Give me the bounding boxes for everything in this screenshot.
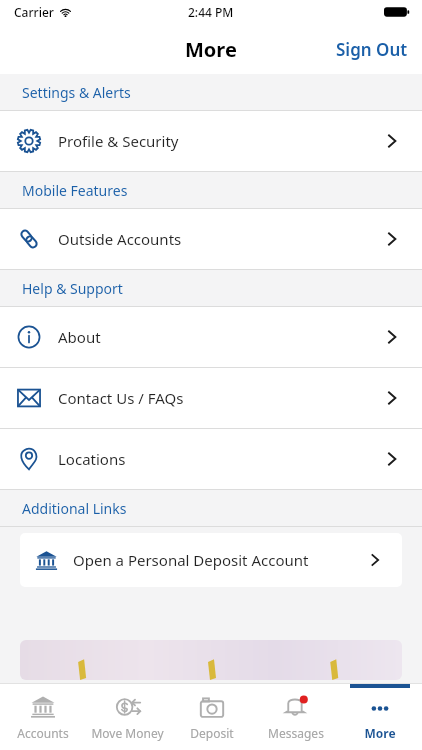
staticText: Deposit: [190, 725, 234, 741]
staticText: Open a Personal Deposit Account: [73, 550, 366, 570]
button[interactable]: Outside Accounts: [0, 209, 422, 269]
button[interactable]: Accounts: [0, 684, 85, 750]
staticText: Outside Accounts: [58, 229, 382, 249]
button[interactable]: Messages: [254, 684, 338, 750]
button[interactable]: Contact Us / FAQs: [0, 368, 422, 428]
staticText: Move Money: [91, 725, 164, 741]
staticText: Mobile Features: [22, 181, 128, 200]
staticText: Additional Links: [22, 499, 127, 518]
button[interactable]: Profile & Security: [0, 111, 422, 171]
button[interactable]: More: [338, 684, 422, 750]
staticText: About: [58, 327, 382, 347]
staticText: Carrier: [14, 4, 54, 20]
staticText: 2:44 PM: [188, 4, 234, 20]
staticText: Accounts: [17, 725, 69, 741]
button[interactable]: Open a Personal Deposit Account: [20, 533, 402, 587]
staticText: More: [185, 36, 237, 63]
button[interactable]: Locations: [0, 429, 422, 489]
staticText: Help & Support: [22, 279, 123, 298]
staticText: Settings & Alerts: [22, 83, 131, 102]
staticText: Profile & Security: [58, 131, 382, 151]
staticText: Contact Us / FAQs: [58, 388, 382, 408]
staticText: Locations: [58, 449, 382, 469]
button[interactable]: About: [0, 307, 422, 367]
button[interactable]: [20, 640, 402, 680]
button[interactable]: Sign Out: [322, 30, 422, 69]
button[interactable]: Move Money: [85, 684, 170, 750]
staticText: More: [364, 725, 396, 741]
button[interactable]: Deposit: [170, 684, 254, 750]
staticText: Messages: [268, 725, 324, 741]
staticText: Sign Out: [336, 38, 408, 61]
